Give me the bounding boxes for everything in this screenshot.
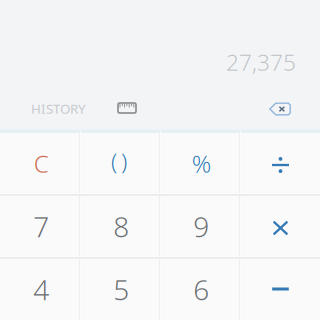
staticText: 27,375 bbox=[226, 47, 296, 77]
button[interactable]: 8 bbox=[81, 195, 161, 258]
staticText: 5 bbox=[113, 271, 129, 308]
button[interactable]: 7 bbox=[1, 195, 81, 258]
button[interactable]: 4 bbox=[1, 258, 81, 320]
button[interactable]: Multiply bbox=[240, 194, 320, 257]
staticText: % bbox=[192, 148, 211, 179]
button[interactable]: % bbox=[161, 132, 241, 195]
button[interactable]: Unit converter bbox=[113, 97, 141, 119]
staticText: 7 bbox=[33, 208, 49, 245]
staticText: HISTORY bbox=[31, 100, 86, 117]
button[interactable]: 6 bbox=[161, 258, 241, 320]
button[interactable]: ( ) bbox=[79, 129, 159, 192]
staticText: 4 bbox=[33, 271, 49, 308]
button[interactable]: Divide bbox=[240, 131, 320, 194]
button[interactable]: 9 bbox=[161, 195, 241, 258]
button[interactable]: Subtract bbox=[240, 257, 320, 320]
button[interactable]: C bbox=[1, 132, 81, 195]
staticText: 8 bbox=[113, 208, 129, 245]
staticText: 6 bbox=[193, 271, 209, 308]
button[interactable]: Backspace bbox=[265, 98, 295, 120]
staticText: C bbox=[34, 148, 49, 179]
button[interactable]: 5 bbox=[81, 258, 161, 320]
staticText: 9 bbox=[193, 208, 209, 245]
staticText: ( ) bbox=[111, 146, 127, 176]
button[interactable]: HISTORY bbox=[31, 97, 91, 119]
